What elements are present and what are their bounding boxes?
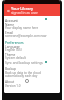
button[interactable]: Preferences — [5, 40, 24, 44]
button[interactable]: Your display name here — [5, 26, 39, 30]
button[interactable]: Email — [5, 31, 14, 35]
staticText: Version 1.0 — [5, 84, 21, 88]
button[interactable]: automatically each day — [5, 74, 38, 78]
button[interactable]: English (US) — [5, 48, 22, 52]
button[interactable]: System default — [5, 56, 26, 60]
button[interactable]: Sync and backup settings — [5, 61, 43, 65]
staticText: Back up data to the cloud — [5, 71, 41, 75]
staticText: Your display name here — [5, 26, 39, 30]
staticText: Account — [5, 18, 18, 22]
staticText: Backup — [5, 67, 17, 71]
staticText: System default — [5, 56, 26, 60]
button[interactable]: Back up data to the cloud — [5, 71, 41, 75]
button[interactable]: About — [5, 80, 15, 84]
staticText: Name — [5, 23, 14, 27]
button[interactable]: Backup — [5, 67, 17, 71]
staticText: Theme — [5, 53, 16, 57]
button[interactable]: Version 1.0 — [5, 84, 21, 88]
staticText: Language — [5, 45, 20, 49]
staticText: someone@example.com now — [5, 34, 47, 38]
button[interactable]: Theme — [5, 53, 16, 57]
staticText: About — [5, 80, 15, 84]
staticText: Your Library — [11, 6, 34, 11]
button[interactable]: Name — [5, 23, 14, 27]
button[interactable]: Language — [5, 45, 20, 49]
button[interactable]: someone@example.com now — [5, 34, 47, 38]
staticText: automatically each day — [5, 74, 38, 78]
staticText: Preferences — [5, 40, 24, 44]
staticText: Sync and backup settings — [5, 61, 43, 65]
staticText: Email — [5, 31, 14, 35]
button[interactable]: Account — [5, 18, 18, 22]
staticText: signed in as user — [11, 10, 38, 15]
staticText: English (US) — [5, 48, 22, 52]
button[interactable]: Navigate up — [6, 8, 11, 13]
